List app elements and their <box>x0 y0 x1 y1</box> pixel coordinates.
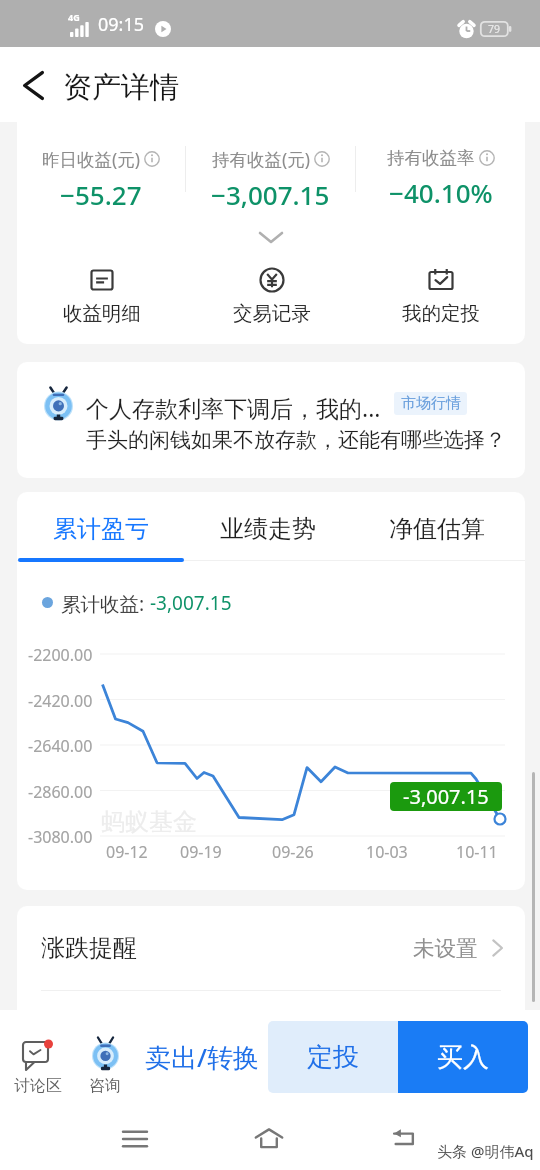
staticText: 4G <box>68 11 80 23</box>
button[interactable]: 讨论区 <box>4 1022 72 1102</box>
staticText: 09-19 <box>180 841 222 863</box>
button[interactable]: 我的定投 <box>356 270 525 326</box>
staticText: 未设置 <box>413 935 478 962</box>
staticText: 收益明细 <box>63 301 141 326</box>
staticText: -2200.00 <box>28 644 93 666</box>
button[interactable]: 持有收益(元) <box>186 124 355 212</box>
staticText: 09-26 <box>272 841 314 863</box>
button[interactable]: 收益明细 <box>17 270 187 326</box>
staticText: 市场行情 <box>401 394 461 413</box>
button[interactable]: 涨跌提醒 <box>41 906 507 990</box>
staticText: 09:15 <box>98 12 145 37</box>
staticText: -2420.00 <box>28 690 93 712</box>
staticText: 手头的闲钱如果不放存款，还能有哪些选择？ <box>86 427 506 453</box>
button[interactable]: 卖出/转换 <box>136 1021 268 1093</box>
button[interactable]: Back <box>8 60 58 110</box>
staticText: 定投 <box>307 1041 359 1074</box>
staticText: 个人存款利率下调后，我的... <box>86 392 381 423</box>
button[interactable]: 昨日收益(元) <box>17 124 185 212</box>
staticText: −55.27 <box>60 177 142 212</box>
staticText: 涨跌提醒 <box>41 933 137 963</box>
staticText: 买入 <box>437 1041 489 1074</box>
button[interactable]: Back <box>380 1114 428 1162</box>
staticText: 头条 @明伟Aq <box>437 1141 534 1161</box>
staticText: 业绩走势 <box>220 514 316 544</box>
button[interactable]: 交易记录 <box>187 270 356 326</box>
button[interactable]: 累计盈亏 <box>18 496 184 562</box>
button[interactable]: Recent apps <box>111 1115 159 1163</box>
staticText: 79 <box>488 22 501 36</box>
staticText: 咨询 <box>89 1076 121 1096</box>
staticText: 资产详情 <box>63 69 179 106</box>
staticText: −3,007.15 <box>211 177 330 212</box>
staticText: 我的定投 <box>402 301 480 326</box>
button[interactable]: 持有收益率 <box>356 124 525 210</box>
staticText: 09-12 <box>106 841 148 863</box>
button[interactable]: 定投 <box>268 1021 398 1093</box>
button[interactable]: Home <box>245 1114 293 1162</box>
staticText: 交易记录 <box>233 301 311 326</box>
button[interactable]: 咨询 <box>72 1022 140 1102</box>
staticText: -2640.00 <box>28 735 93 757</box>
button[interactable]: 净值估算 <box>354 496 520 562</box>
staticText: 净值估算 <box>389 514 485 544</box>
staticText: -3,007.15 <box>150 590 232 616</box>
button[interactable]: 买入 <box>398 1021 528 1093</box>
staticText: 昨日收益(元) <box>42 147 140 171</box>
staticText: -3,007.15 <box>403 783 489 810</box>
staticText: -3080.00 <box>28 826 93 848</box>
staticText: 持有收益率 <box>387 147 475 169</box>
staticText: 持有收益(元) <box>212 147 310 171</box>
staticText: 累计盈亏 <box>53 514 149 544</box>
staticText: 10-11 <box>456 841 498 863</box>
staticText: 累计收益: <box>61 590 145 617</box>
staticText: -2860.00 <box>28 781 93 803</box>
button[interactable]: 个人存款利率下调后，我的... <box>17 362 525 478</box>
staticText: 蚂蚁基金 <box>101 807 197 837</box>
staticText: 讨论区 <box>14 1076 62 1096</box>
staticText: 10-03 <box>366 841 408 863</box>
staticText: −40.10% <box>389 175 493 210</box>
button[interactable]: 业绩走势 <box>185 496 351 562</box>
staticText: 卖出/转换 <box>145 1039 260 1075</box>
